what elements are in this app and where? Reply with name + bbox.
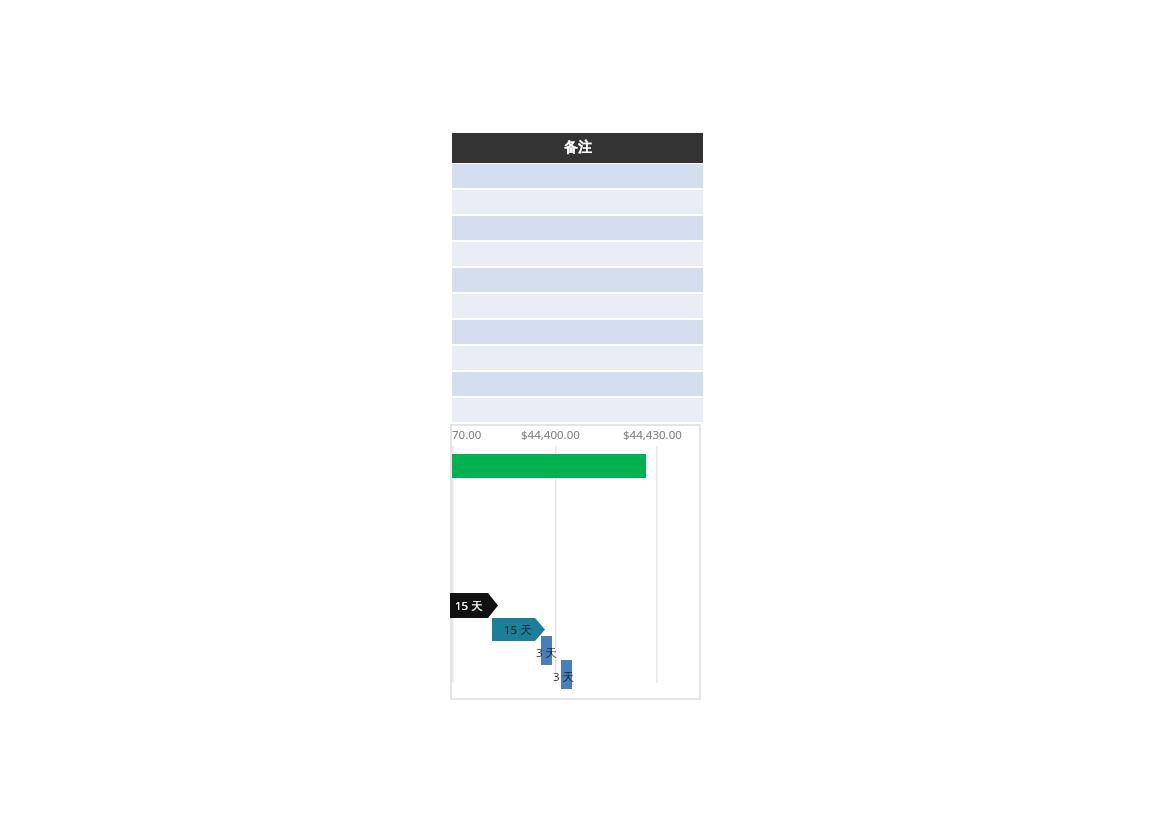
button[interactable] <box>452 163 703 189</box>
button[interactable] <box>452 215 703 241</box>
button[interactable] <box>452 397 703 423</box>
button[interactable]: 备注 <box>452 133 703 163</box>
button[interactable] <box>452 371 703 397</box>
staticText: 70.00 <box>452 427 482 443</box>
button[interactable] <box>452 293 703 319</box>
staticText: 3 天 <box>553 669 575 685</box>
button[interactable] <box>452 345 703 371</box>
button[interactable] <box>452 319 703 345</box>
staticText: $44,400.00 <box>521 427 580 443</box>
staticText: $44,430.00 <box>623 427 682 443</box>
staticText: 15 天 <box>504 622 532 638</box>
button[interactable] <box>452 189 703 215</box>
button[interactable] <box>452 241 703 267</box>
staticText: 备注 <box>564 139 592 157</box>
button[interactable]: Gantt chart <box>451 425 700 699</box>
staticText: 15 天 <box>455 598 483 614</box>
staticText: 3 天 <box>536 645 558 661</box>
button[interactable]: Remarks table <box>452 133 703 423</box>
button[interactable] <box>452 267 703 293</box>
